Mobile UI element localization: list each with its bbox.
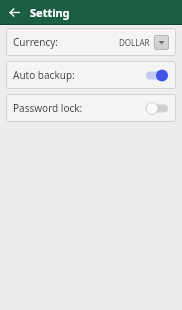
button[interactable]: Off: [146, 102, 168, 115]
button[interactable]: Password lock:: [6, 94, 176, 122]
staticText: Currency:: [13, 35, 58, 49]
button[interactable]: Back: [4, 2, 24, 22]
button[interactable]: Auto backup:: [6, 61, 176, 89]
button[interactable]: Currency:: [6, 28, 176, 56]
staticText: Setting: [30, 5, 70, 20]
button[interactable]: On: [146, 69, 168, 82]
staticText: DOLLAR: [119, 37, 150, 48]
staticText: Password lock:: [13, 101, 83, 115]
staticText: Auto backup:: [13, 68, 75, 82]
button[interactable]: Select currency: [154, 35, 169, 50]
